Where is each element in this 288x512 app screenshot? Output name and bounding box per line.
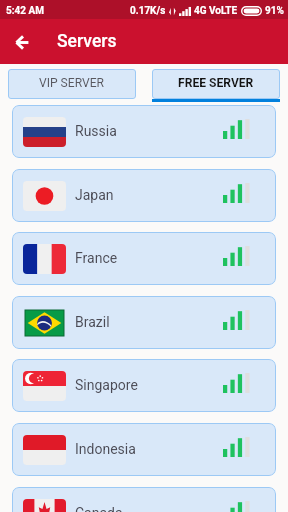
button[interactable]: Russia	[12, 105, 276, 158]
button[interactable]: Japan	[12, 169, 276, 222]
staticText: FREE SERVER	[178, 76, 254, 90]
staticText: 0.17K/s	[130, 5, 166, 17]
button[interactable]: FREE SERVER	[152, 69, 280, 102]
staticText: 91%	[265, 5, 284, 17]
staticText: Japan	[75, 187, 114, 203]
staticText: 5:42 AM	[6, 5, 44, 17]
staticText: France	[75, 250, 118, 266]
button[interactable]: Canada	[12, 487, 276, 512]
button[interactable]: Singapore	[12, 359, 276, 412]
button[interactable]: VIP SERVER	[8, 69, 136, 102]
staticText: Indonesia	[75, 441, 136, 457]
staticText: Canada	[75, 505, 123, 512]
staticText: VIP SERVER	[39, 76, 105, 90]
button[interactable]: Back	[6, 26, 38, 58]
button[interactable]: Indonesia	[12, 423, 276, 476]
staticText: Singapore	[75, 377, 138, 393]
button[interactable]: Brazil	[12, 296, 276, 349]
staticText: Servers	[57, 31, 117, 52]
staticText: 4G VoLTE	[194, 5, 238, 17]
button[interactable]: France	[12, 232, 276, 285]
staticText: Russia	[75, 123, 117, 139]
staticText: Brazil	[75, 314, 110, 330]
